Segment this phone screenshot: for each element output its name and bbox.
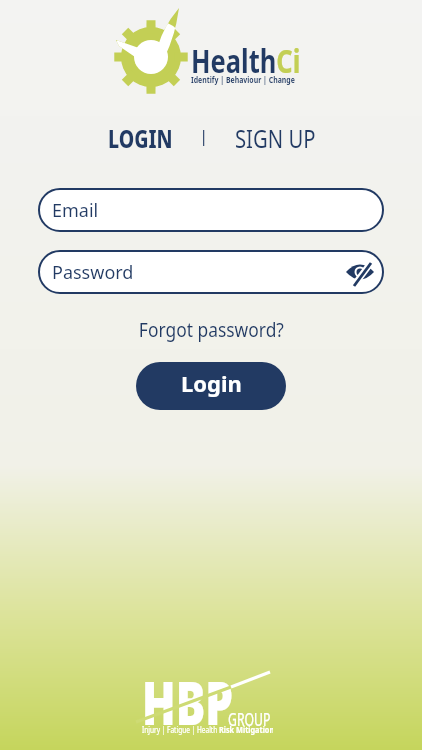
staticText: Login	[181, 368, 242, 398]
staticText: Forgot password?	[139, 316, 284, 343]
staticText: HBP	[142, 660, 233, 732]
staticText: Email	[52, 198, 99, 223]
staticText: Identify | Behaviour | Change	[191, 73, 295, 86]
staticText: SIGN UP	[235, 121, 316, 155]
staticText: GROUP	[228, 706, 271, 731]
button[interactable]: LOGIN	[108, 121, 191, 155]
staticText: Password	[52, 260, 134, 285]
staticText: Injury | Fatigue | Health Risk Mitigatio…	[142, 723, 273, 736]
button[interactable]: Email	[38, 188, 384, 232]
staticText: HealthCi	[191, 39, 300, 82]
staticText: LOGIN	[108, 121, 173, 155]
staticText: |	[199, 124, 209, 147]
button[interactable]: Password	[38, 250, 384, 294]
button[interactable]: SIGN UP	[235, 121, 335, 155]
button[interactable]: Login	[136, 362, 286, 410]
button[interactable]: Forgot password?	[128, 316, 295, 343]
